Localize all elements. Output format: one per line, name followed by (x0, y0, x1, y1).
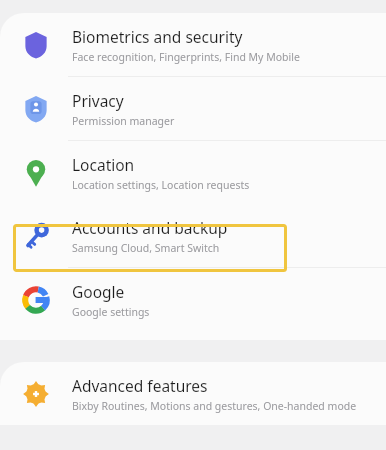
button[interactable]: Advanced features (0, 362, 386, 425)
button[interactable]: Accounts and backup (0, 204, 386, 267)
staticText: Google settings (72, 305, 150, 319)
staticText: Biometrics and security (72, 26, 243, 47)
staticText: Location settings, Location requests (72, 178, 250, 192)
button[interactable]: Location (0, 141, 386, 204)
staticText: Privacy (72, 90, 124, 111)
staticText: Advanced features (72, 375, 208, 396)
button[interactable]: Privacy (0, 77, 386, 140)
staticText: Samsung Cloud, Smart Switch (72, 241, 220, 255)
staticText: Accounts and backup (72, 217, 228, 238)
button[interactable]: Google (0, 268, 386, 331)
staticText: Face recognition, Fingerprints, Find My … (72, 50, 300, 64)
button[interactable]: Biometrics and security (0, 13, 386, 76)
staticText: Location (72, 154, 135, 175)
staticText: Google (72, 281, 125, 302)
staticText: Permission manager (72, 114, 175, 128)
staticText: Bixby Routines, Motions and gestures, On… (72, 399, 357, 413)
